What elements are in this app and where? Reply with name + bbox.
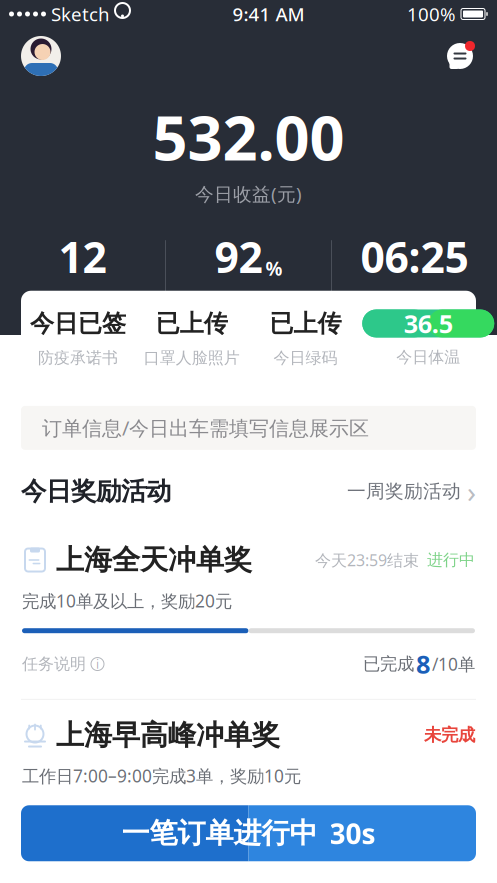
- staticText: 进行中: [427, 550, 475, 570]
- button[interactable]: 已上传: [135, 309, 249, 368]
- staticText: 30s: [329, 815, 375, 852]
- staticText: 在线时长: [380, 291, 448, 312]
- staticText: 任务说明: [22, 654, 86, 674]
- staticText: 今日奖励活动: [21, 476, 171, 507]
- button[interactable]: 今日已签: [21, 309, 135, 368]
- staticText: 上海早高峰冲单奖: [56, 718, 280, 752]
- staticText: ›: [467, 472, 476, 511]
- button[interactable]: 上海全天冲单奖: [0, 525, 497, 699]
- staticText: 订单信息/今日出车需填写信息展示区: [42, 415, 369, 441]
- staticText: 已完成: [363, 653, 414, 675]
- staticText: 今日已签: [30, 309, 126, 338]
- staticText: 8: [416, 647, 430, 681]
- staticText: 一笔订单进行中: [121, 816, 317, 850]
- staticText: 12: [58, 228, 106, 285]
- button[interactable]: 上海早高峰冲单奖: [0, 700, 497, 805]
- staticText: Sketch: [51, 2, 110, 26]
- staticText: 未完成: [424, 724, 475, 746]
- staticText: 92: [214, 228, 262, 285]
- button[interactable]: Messages: [444, 40, 476, 72]
- button[interactable]: 36.5: [362, 309, 476, 367]
- staticText: 今日体温: [396, 347, 460, 367]
- staticText: i: [96, 656, 99, 672]
- staticText: 上海全天冲单奖: [56, 543, 252, 577]
- staticText: 已上传: [269, 309, 341, 338]
- staticText: 532.00: [152, 96, 344, 177]
- staticText: 今日绿码: [273, 348, 337, 368]
- staticText: 06:25: [360, 228, 468, 285]
- staticText: 今日接单: [48, 291, 116, 312]
- staticText: 36.5: [404, 307, 453, 340]
- button[interactable]: 已上传: [248, 309, 362, 368]
- staticText: 今日收益(元): [195, 181, 302, 206]
- button[interactable]: Profile: [21, 36, 61, 76]
- staticText: 口罩人脸照片: [144, 348, 240, 368]
- staticText: 9:41 AM: [232, 2, 304, 26]
- staticText: /10单: [432, 652, 475, 675]
- button[interactable]: 一笔订单进行中: [21, 805, 476, 861]
- staticText: 今天23:59结束: [315, 549, 419, 571]
- staticText: 防疫承诺书: [38, 348, 118, 368]
- staticText: 完成10单及以上，奖励20元: [22, 589, 232, 612]
- staticText: 100%: [407, 2, 456, 26]
- staticText: 已上传: [156, 309, 228, 338]
- button[interactable]: 一周奖励活动: [347, 472, 476, 511]
- staticText: 一周奖励活动: [347, 480, 461, 503]
- staticText: 工作日7:00–9:00完成3单，奖励10元: [22, 764, 301, 787]
- staticText: %: [265, 256, 282, 281]
